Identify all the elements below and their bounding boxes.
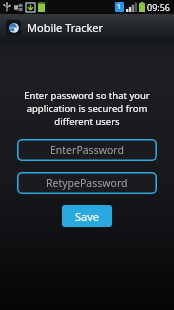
button[interactable]: Save [62, 205, 112, 227]
staticText: 1 [117, 2, 122, 12]
staticText: Mobile Tracker [27, 20, 104, 35]
staticText: 09:56 [147, 1, 171, 13]
button[interactable]: Enter password field [17, 139, 157, 161]
staticText: Save [75, 209, 100, 224]
staticText: Enter password so that your application … [8, 89, 166, 128]
button[interactable]: Retype password field [17, 172, 157, 194]
staticText: RetypePassword [46, 176, 128, 190]
staticText: EnterPassword [50, 143, 124, 157]
